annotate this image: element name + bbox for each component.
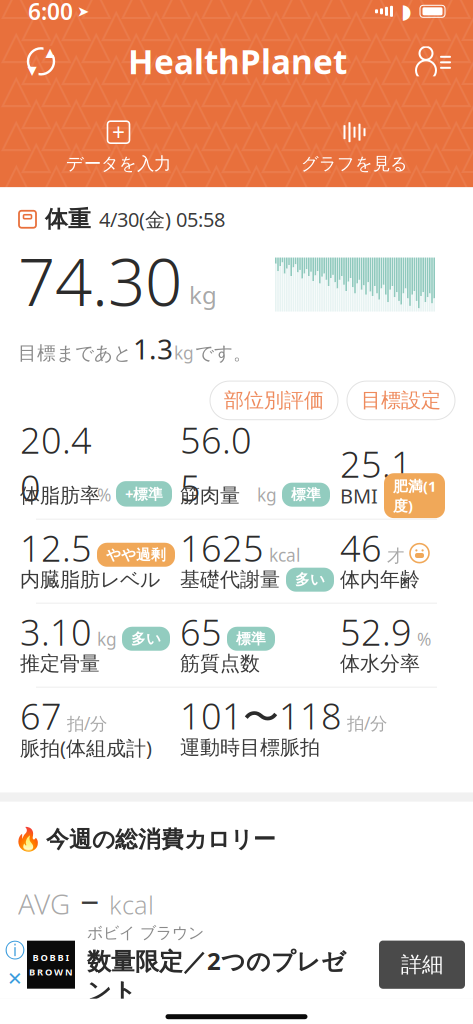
staticText: △ [121, 110, 152, 155]
staticText: 56.05 [180, 416, 252, 511]
staticText: グラフを見る [301, 153, 408, 174]
staticText: △ [421, 88, 452, 133]
staticText: △ [341, 132, 372, 177]
staticText: △ [381, 44, 412, 89]
staticText: △ [121, 154, 152, 199]
staticText: ⓘ [5, 938, 25, 963]
staticText: △ [221, 0, 252, 45]
staticText: 6:00 [28, 0, 73, 26]
staticText: △ [201, 0, 232, 23]
staticText: △ [281, 154, 312, 199]
staticText: △ [141, 132, 172, 177]
staticText: △ [361, 66, 392, 111]
staticText: △ [161, 66, 192, 111]
staticText: △ [461, 132, 473, 177]
button[interactable]: 部位別評価 [210, 381, 338, 420]
staticText: △ [301, 0, 332, 45]
staticText: 肥満(1度) [393, 476, 436, 515]
staticText: △ [41, 66, 72, 111]
staticText: △ [461, 88, 473, 133]
staticText: 筋肉量 [180, 483, 240, 508]
button[interactable]: B O B B I [27, 923, 473, 1006]
staticText: △ [301, 132, 332, 177]
staticText: B O B B I [32, 951, 69, 964]
staticText: △ [81, 22, 112, 67]
staticText: 目標まであと [18, 342, 132, 365]
staticText: △ [321, 0, 352, 23]
staticText: 数量限定／2つのプレゼント [87, 945, 346, 1006]
staticText: ボビイ ブラウン [87, 923, 204, 943]
staticText: △ [61, 0, 92, 45]
staticText: △ [321, 22, 352, 67]
staticText: % [417, 627, 431, 650]
staticText: △ [21, 132, 52, 177]
staticText: 4/30(金) 05:58 [99, 206, 225, 233]
button[interactable]: Close ad [5, 969, 25, 989]
staticText: △ [281, 0, 312, 23]
staticText: △ [341, 88, 372, 133]
staticText: △ [421, 132, 452, 177]
staticText: △ [201, 66, 232, 111]
staticText: △ [161, 110, 192, 155]
staticText: △ [161, 22, 192, 67]
staticText: △ [401, 110, 432, 155]
staticText: △ [81, 0, 112, 23]
staticText: △ [121, 22, 152, 67]
staticText: kg [174, 341, 194, 364]
staticText: △ [221, 44, 252, 89]
staticText: △ [341, 0, 372, 45]
staticText: △ [241, 0, 272, 23]
staticText: △ [441, 0, 472, 23]
staticText: 65 [180, 608, 222, 656]
staticText: 12.5 [20, 524, 92, 572]
staticText: △ [321, 66, 352, 111]
staticText: 推定骨量 [20, 651, 100, 676]
staticText: △ [101, 44, 132, 89]
staticText: △ [81, 110, 112, 155]
staticText: △ [101, 88, 132, 133]
staticText: △ [101, 132, 132, 177]
staticText: △ [61, 88, 92, 133]
button[interactable]: Ad info [5, 941, 25, 961]
staticText: △ [181, 44, 212, 89]
staticText: kg [97, 627, 117, 650]
staticText: △ [201, 154, 232, 199]
staticText: 67 [20, 692, 62, 740]
staticText: △ [141, 88, 172, 133]
staticText: △ [281, 22, 312, 67]
staticText: △ [181, 132, 212, 177]
staticText: ◗ [401, 0, 412, 23]
staticText: 運動時目標脈拍 [180, 735, 320, 760]
staticText: △ [1, 154, 32, 199]
button[interactable]: 目標設定 [347, 381, 455, 420]
staticText: △ [441, 22, 472, 67]
staticText: △ [341, 44, 372, 89]
staticText: − [80, 879, 99, 924]
staticText: △ [241, 22, 272, 67]
staticText: △ [301, 44, 332, 89]
staticText: 部位別評価 [224, 388, 324, 413]
staticText: 標準 [291, 486, 321, 504]
staticText: やや過剰 [106, 546, 166, 564]
staticText: △ [361, 154, 392, 199]
staticText: データを入力 [66, 153, 171, 174]
staticText: + [112, 117, 125, 147]
staticText: △ [61, 44, 92, 89]
staticText: △ [421, 0, 452, 45]
staticText: 体重 [45, 205, 91, 233]
button[interactable]: Sync [16, 40, 66, 82]
staticText: 脈拍(体組成計) [20, 734, 152, 761]
button[interactable]: Profile [409, 40, 457, 82]
button[interactable]: グラフを見る [236, 115, 472, 179]
staticText: △ [181, 88, 212, 133]
staticText: 目標設定 [361, 388, 441, 413]
staticText: 46 [340, 524, 382, 572]
staticText: △ [281, 110, 312, 155]
staticText: △ [461, 44, 473, 89]
staticText: HealthPlanet [128, 39, 347, 83]
staticText: 1.3 [133, 330, 173, 367]
staticText: △ [441, 154, 472, 199]
staticText: △ [141, 0, 172, 45]
button[interactable]: + [0, 115, 236, 179]
staticText: 20.40 [20, 416, 92, 511]
